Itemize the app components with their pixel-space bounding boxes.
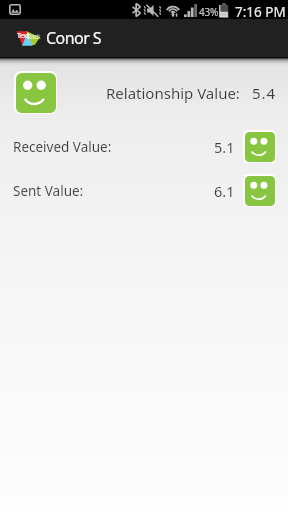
staticText: 6.1: [214, 181, 235, 201]
button[interactable]: Mood score: [14, 71, 57, 114]
button[interactable]: Mood score: [243, 130, 276, 163]
staticText: 43%: [199, 5, 219, 19]
staticText: Relationship Value:: [106, 83, 240, 103]
staticText: 5.4: [252, 83, 276, 103]
staticText: Conor S: [46, 27, 102, 49]
staticText: Sent Value:: [13, 182, 84, 200]
staticText: 5.1: [214, 137, 235, 157]
button[interactable]: Mood score: [243, 174, 276, 207]
staticText: Text: [17, 31, 30, 41]
button[interactable]: Received Value:: [0, 130, 288, 163]
button[interactable]: Sent Value:: [0, 174, 288, 207]
staticText: Received Value:: [13, 138, 112, 156]
staticText: Back: [27, 32, 41, 41]
staticText: 7:16 PM: [235, 3, 286, 21]
